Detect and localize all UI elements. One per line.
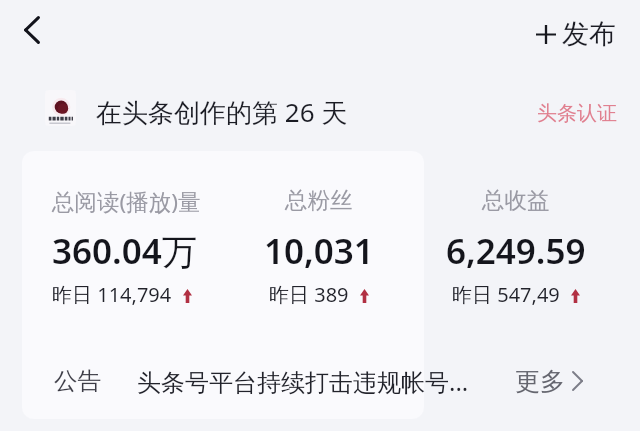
staticText: 头条号平台持续打击违规帐号... [137, 365, 469, 398]
button[interactable]: 总粉丝 [226, 176, 411, 316]
button[interactable]: 总收益 [421, 176, 611, 316]
button[interactable]: Back [8, 6, 56, 54]
staticText: 360.04万 [52, 227, 197, 275]
staticText: 在头条创作的第 26 天 [96, 94, 348, 130]
button[interactable]: 发布 [528, 10, 624, 58]
staticText: 头条认证 [537, 101, 617, 126]
button[interactable]: 公告 [24, 353, 616, 409]
staticText: 昨日 547,49 [452, 281, 560, 308]
button[interactable]: 总阅读(播放)量 [24, 176, 226, 316]
staticText: 总粉丝 [285, 186, 353, 214]
staticText: 6,249.59 [446, 227, 586, 275]
staticText: 总收益 [482, 186, 550, 214]
staticText: 10,031 [264, 227, 374, 275]
staticText: 总阅读(播放)量 [52, 186, 201, 217]
staticText: 发布 [562, 17, 616, 51]
staticText: 昨日 389 [269, 281, 349, 308]
staticText: 更多 [515, 366, 565, 397]
staticText: 昨日 114,794 [52, 281, 172, 308]
staticText: 公告 [54, 366, 101, 396]
button[interactable]: 头条认证 [531, 96, 623, 131]
